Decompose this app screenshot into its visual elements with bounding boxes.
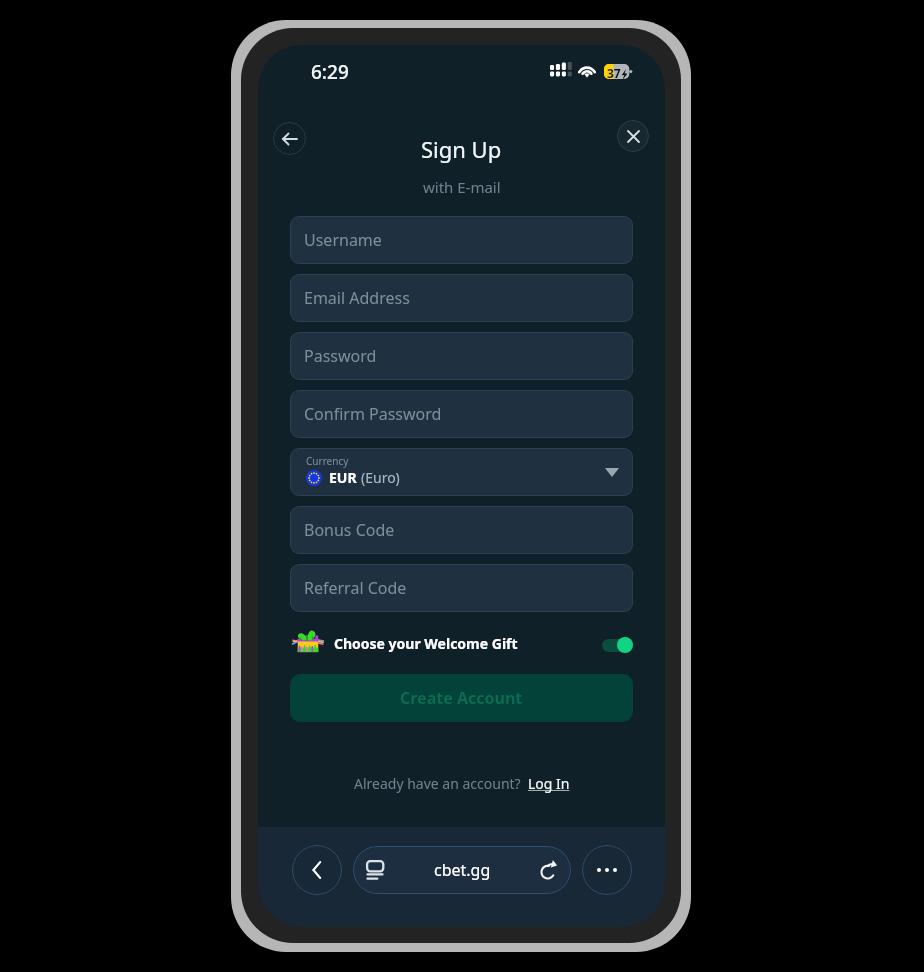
staticText: Email Address [304,287,410,309]
button[interactable]: Close [617,120,649,152]
staticText: EUR [329,468,361,487]
staticText: 6:29 [311,59,349,85]
button[interactable]: Referral Code [290,564,633,612]
staticText: (Euro) [361,468,400,487]
button[interactable]: Create Account [290,674,633,722]
button[interactable]: Page settings [353,848,397,892]
button[interactable]: More [582,845,632,895]
button[interactable]: Currency [290,448,633,496]
button[interactable]: cbet.gg [353,846,571,894]
staticText: Referral Code [304,577,407,599]
staticText: Log In [528,774,570,793]
button[interactable]: Back [273,122,306,155]
button[interactable]: Back [292,845,342,895]
staticText: Choose your Welcome Gift [334,634,518,653]
staticText: Password [304,345,377,367]
button[interactable]: Confirm Password [290,390,633,438]
staticText: Confirm Password [304,403,442,425]
staticText: Already have an account? [354,774,528,793]
staticText: Create Account [400,687,523,709]
staticText: cbet.gg [434,859,491,881]
staticText: Bonus Code [304,519,395,541]
staticText: Currency [306,454,349,468]
button[interactable]: Password [290,332,633,380]
button[interactable]: Email Address [290,274,633,322]
staticText: Sign Up [421,134,502,164]
button[interactable]: Username [290,216,633,264]
button[interactable]: Choose your Welcome Gift toggle [602,637,633,653]
staticText: with E-mail [423,177,501,197]
staticText: 37 [607,65,621,81]
button[interactable]: Reload [527,848,571,892]
staticText: Username [304,229,382,251]
button[interactable]: Bonus Code [290,506,633,554]
button[interactable]: Log In [528,774,570,793]
button[interactable]: Choose your Welcome Gift [290,629,633,653]
